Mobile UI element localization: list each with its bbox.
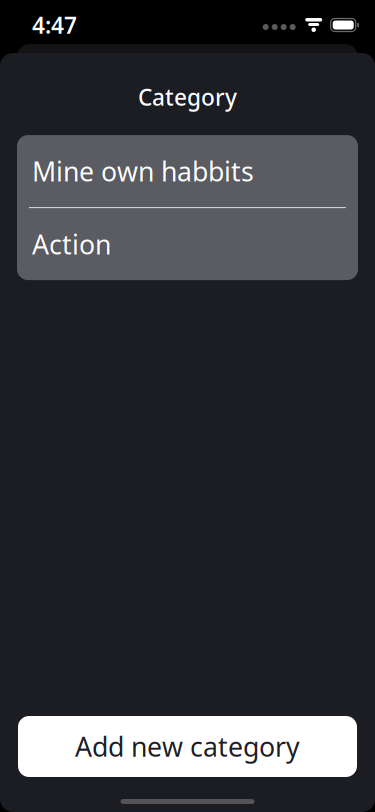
button[interactable]: Add new category <box>18 716 357 777</box>
button[interactable]: Mine own habbits <box>17 135 358 207</box>
staticText: Add new category <box>75 729 300 764</box>
staticText: Mine own habbits <box>32 153 254 189</box>
button[interactable]: Action <box>17 208 358 280</box>
staticText: 4:47 <box>32 10 77 40</box>
staticText: Action <box>32 226 111 262</box>
staticText: Category <box>138 82 237 112</box>
